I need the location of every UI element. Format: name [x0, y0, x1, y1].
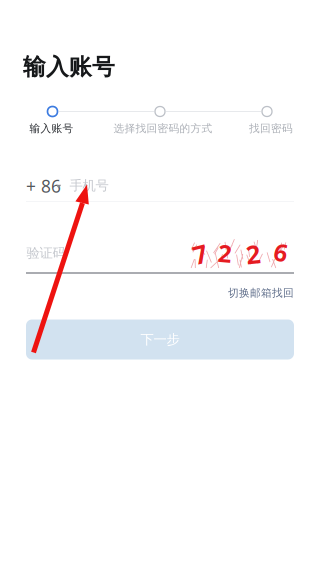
staticText: 6	[274, 236, 288, 268]
staticText: 2	[246, 237, 260, 271]
button[interactable]: 换一张验证码	[193, 240, 288, 267]
button[interactable]: 选择国家区号	[26, 170, 68, 202]
staticText: 验证码	[26, 245, 65, 261]
staticText: 2	[218, 237, 232, 269]
staticText: 找回密码	[249, 122, 293, 135]
staticText: + 86	[26, 174, 61, 197]
staticText: 输入账号	[29, 122, 73, 135]
button[interactable]: 切换邮箱找回	[228, 285, 294, 301]
staticText: 切换邮箱找回	[228, 286, 294, 299]
staticText: 7	[193, 237, 207, 271]
button[interactable]: 下一步	[26, 319, 294, 359]
staticText: 手机号	[69, 177, 108, 194]
staticText: 输入账号	[23, 53, 115, 81]
staticText: 选择找回密码的方式	[113, 122, 212, 135]
staticText: 下一步	[140, 331, 179, 348]
